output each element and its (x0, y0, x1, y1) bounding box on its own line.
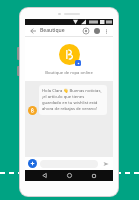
staticText: Boutique de ropa online (45, 70, 93, 76)
button[interactable]: Beautique logo (59, 44, 80, 65)
staticText: Hola Clara 👋 Buenas noticias, ¡el artícu… (42, 88, 104, 112)
button[interactable]: Recent apps (89, 171, 98, 180)
button[interactable]: Add attachment (28, 159, 37, 168)
button[interactable]: Back (28, 26, 37, 35)
button[interactable]: Verified (81, 26, 90, 35)
staticText: Beautique (40, 27, 65, 34)
button[interactable]: Hola Clara 👋 Buenas noticias, ¡el artícu… (39, 85, 107, 115)
button[interactable]: Back (40, 171, 49, 180)
button[interactable]: Home (65, 171, 74, 180)
button[interactable]: More options (102, 27, 110, 35)
button[interactable]: Send (101, 159, 110, 168)
button[interactable]: Info (92, 26, 101, 35)
